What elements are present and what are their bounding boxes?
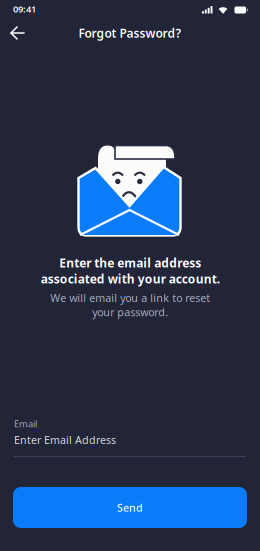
staticText: We will email you a link to reset your p… <box>50 291 210 319</box>
staticText: Enter the email address associated with … <box>40 255 219 287</box>
staticText: Email <box>14 417 37 430</box>
button[interactable]: Back <box>4 19 31 47</box>
staticText: Forgot Password? <box>78 25 181 41</box>
staticText: Send <box>117 500 143 515</box>
staticText: Enter Email Address <box>14 433 116 447</box>
button[interactable]: Send <box>13 487 247 528</box>
staticText: 09:41 <box>13 3 36 15</box>
